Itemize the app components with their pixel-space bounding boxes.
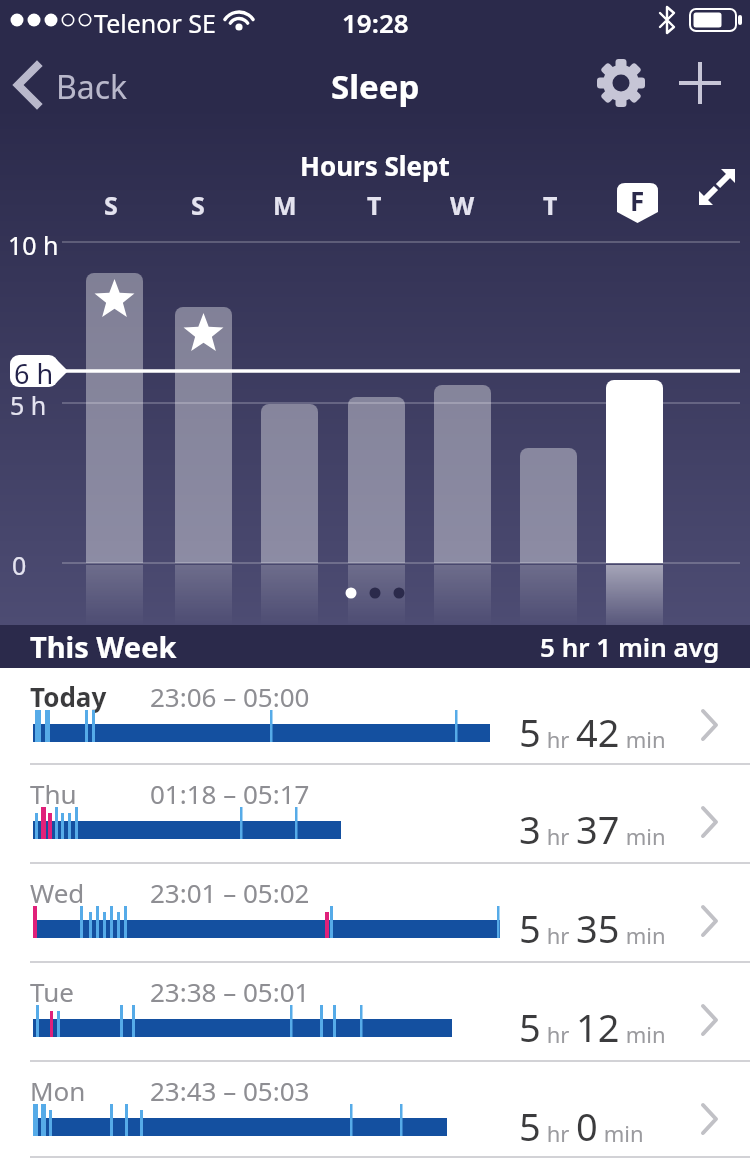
staticText: 35 [576, 902, 620, 954]
staticText: Mon [30, 1073, 86, 1108]
button[interactable] [690, 160, 744, 214]
staticText: F [630, 183, 645, 216]
staticText: Tue [30, 974, 74, 1009]
staticText: 5 h [10, 388, 47, 422]
button[interactable]: Today [0, 668, 750, 765]
button[interactable] [676, 58, 726, 108]
staticText: hr [541, 1019, 576, 1049]
staticText: 10 h [8, 228, 59, 262]
button[interactable]: Mon [0, 1062, 750, 1158]
staticText: Thu [30, 776, 77, 811]
staticText: T [367, 188, 382, 222]
staticText: min [620, 724, 666, 754]
staticText: 5 [519, 1100, 541, 1152]
staticText: min [620, 821, 666, 851]
staticText: 5 [519, 902, 541, 954]
staticText: M [273, 188, 297, 222]
staticText: Today [30, 679, 107, 714]
staticText: 19:28 [342, 5, 409, 40]
staticText: This Week [30, 627, 177, 666]
staticText: hr [541, 724, 576, 754]
staticText: min [620, 920, 666, 950]
staticText: 23:43 – 05:03 [150, 1073, 310, 1108]
staticText: 3 [519, 803, 541, 855]
staticText: Sleep [331, 64, 420, 109]
staticText: hr [541, 821, 576, 851]
staticText: 5 hr 1 min avg [540, 629, 720, 664]
staticText: min [598, 1118, 644, 1148]
button[interactable]: Tue [0, 963, 750, 1062]
staticText: Back [56, 65, 128, 109]
staticText: 6 h [14, 355, 54, 387]
staticText: 37 [576, 803, 620, 855]
staticText: 0 [12, 548, 27, 582]
staticText: 5 [519, 706, 541, 758]
staticText: 5 [519, 1001, 541, 1053]
button[interactable]: Back [14, 62, 144, 108]
staticText: S [104, 188, 118, 222]
button[interactable] [596, 58, 646, 108]
staticText: min [620, 1019, 666, 1049]
staticText: Telenor SE [94, 6, 216, 40]
staticText: T [543, 188, 558, 222]
button[interactable]: Thu [0, 765, 750, 864]
staticText: 23:38 – 05:01 [150, 974, 310, 1009]
staticText: 12 [576, 1001, 620, 1053]
staticText: hr [541, 1118, 576, 1148]
staticText: 42 [576, 706, 620, 758]
staticText: 23:06 – 05:00 [150, 679, 310, 714]
staticText: hr [541, 920, 576, 950]
staticText: 23:01 – 05:02 [150, 875, 310, 910]
staticText: W [450, 188, 475, 222]
staticText: 01:18 – 05:17 [150, 776, 310, 811]
staticText: Wed [30, 875, 85, 910]
staticText: 0 [576, 1100, 598, 1152]
staticText: S [191, 188, 205, 222]
staticText: Hours Slept [300, 148, 450, 183]
button[interactable]: Wed [0, 864, 750, 963]
